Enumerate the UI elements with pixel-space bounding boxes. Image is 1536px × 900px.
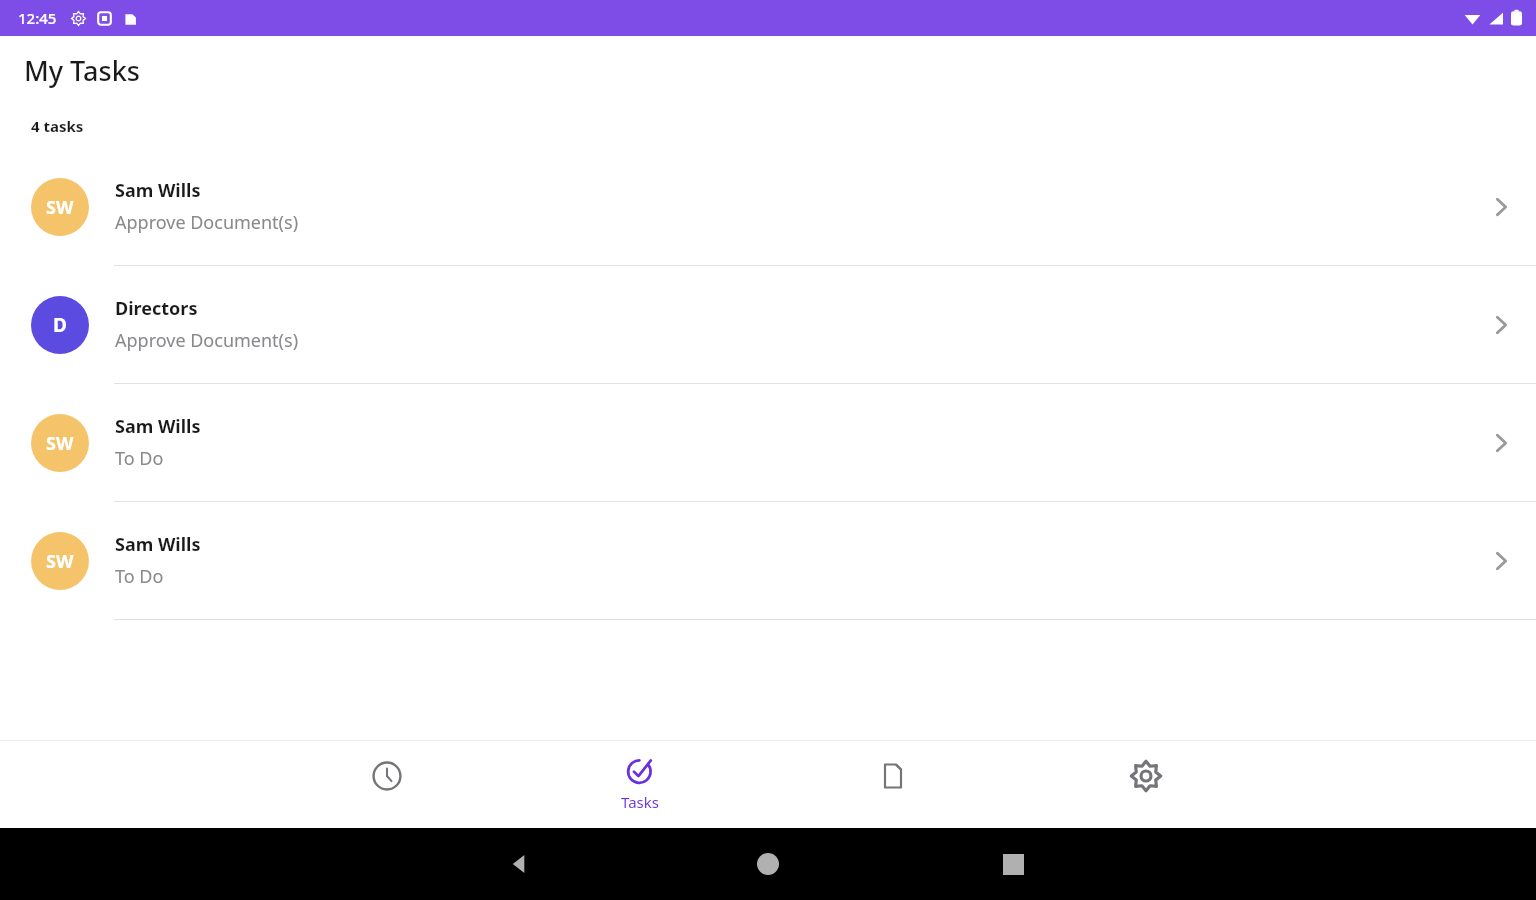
staticText: Tasks [621,792,659,812]
staticText: To Do [115,446,164,471]
staticText: Approve Document(s) [115,210,299,235]
staticText: Approve Document(s) [115,328,299,353]
button[interactable]: SW [0,384,1536,502]
button[interactable]: SW [0,148,1536,266]
staticText: D [53,312,67,338]
button[interactable]: D [0,266,1536,384]
staticText: Directors [115,296,198,321]
staticText: Sam Wills [115,414,201,439]
staticText: 4 tasks [31,116,84,136]
staticText: Sam Wills [115,178,201,203]
button[interactable]: Recent [260,741,513,828]
staticText: Sam Wills [115,532,201,557]
button[interactable]: Tasks [513,741,766,828]
staticText: SW [46,431,74,456]
staticText: SW [46,195,74,220]
button[interactable]: SW [0,502,1536,620]
staticText: 12:45 [18,8,57,28]
staticText: To Do [115,564,164,589]
staticText: SW [46,549,74,574]
staticText: My Tasks [24,52,140,89]
button[interactable]: Settings [1019,741,1272,828]
button[interactable]: Documents [766,741,1019,828]
